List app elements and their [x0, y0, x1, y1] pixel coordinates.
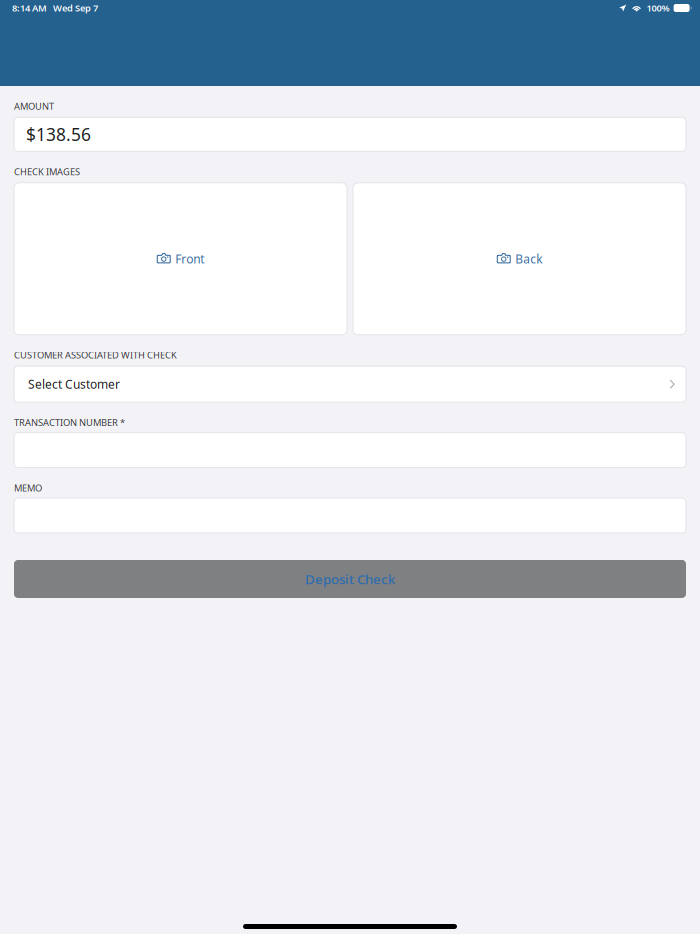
- button[interactable]: Transaction Number: [0, 433, 700, 468]
- staticText: Back: [515, 251, 542, 267]
- button[interactable]: Deposit Check: [0, 560, 700, 598]
- staticText: 8:14 AM: [12, 2, 47, 14]
- staticText: Deposit Check: [305, 570, 395, 588]
- staticText: $138.56: [26, 123, 91, 146]
- staticText: AMOUNT: [14, 100, 54, 112]
- button[interactable]: $138.56: [0, 117, 700, 151]
- staticText: CUSTOMER ASSOCIATED WITH CHECK: [14, 349, 177, 361]
- button[interactable]: Front: [14, 183, 347, 335]
- staticText: Select Customer: [28, 376, 120, 392]
- staticText: Wed Sep 7: [53, 2, 98, 14]
- staticText: MEMO: [14, 482, 42, 494]
- staticText: 100%: [647, 2, 670, 14]
- button[interactable]: Select Customer: [0, 366, 700, 402]
- staticText: Front: [175, 251, 204, 267]
- staticText: TRANSACTION NUMBER *: [14, 416, 125, 429]
- button[interactable]: Memo: [0, 498, 700, 533]
- staticText: CHECK IMAGES: [14, 165, 80, 178]
- button[interactable]: Back: [353, 183, 686, 335]
